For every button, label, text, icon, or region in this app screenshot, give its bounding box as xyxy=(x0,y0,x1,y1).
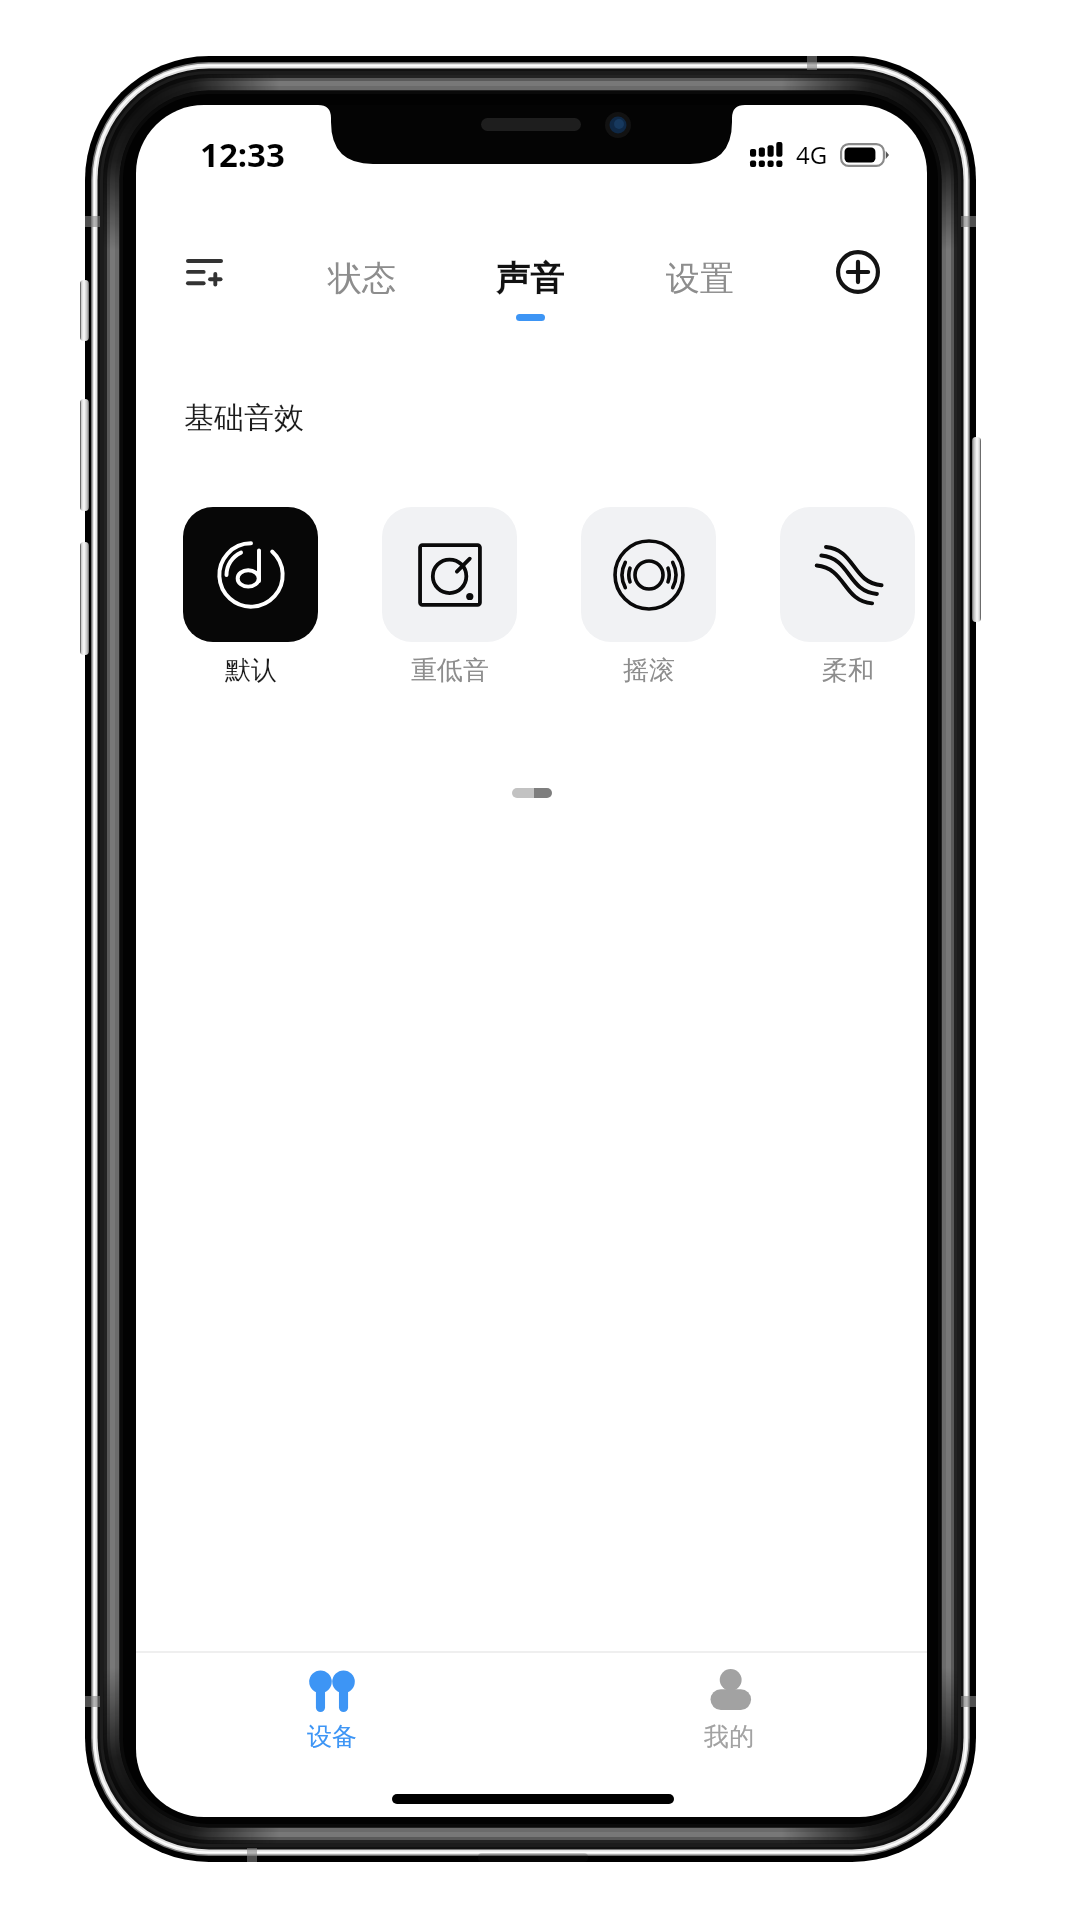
staticText: 重低音 xyxy=(411,654,489,687)
button[interactable]: 默认 xyxy=(183,507,318,703)
staticText: 我的 xyxy=(704,1721,754,1752)
staticText: 摇滚 xyxy=(623,654,675,687)
staticText: 声音 xyxy=(496,257,564,300)
button[interactable]: 重低音 xyxy=(382,507,517,703)
button[interactable]: Add to playlist xyxy=(166,241,243,307)
button[interactable]: 设备 xyxy=(242,1651,422,1771)
staticText: 设置 xyxy=(666,257,734,300)
button[interactable]: Add device xyxy=(822,236,894,308)
staticText: 设备 xyxy=(307,1721,357,1752)
button[interactable]: 摇滚 xyxy=(581,507,716,703)
button[interactable]: 柔和 xyxy=(780,507,915,703)
staticText: 状态 xyxy=(328,257,396,300)
staticText: 柔和 xyxy=(822,654,874,687)
staticText: 基础音效 xyxy=(184,399,304,437)
button[interactable]: 设置 xyxy=(632,246,768,342)
staticText: 4G xyxy=(796,138,828,171)
button[interactable]: 声音 xyxy=(462,246,598,342)
staticText: 12:33 xyxy=(200,132,285,177)
button[interactable]: 状态 xyxy=(294,246,430,342)
staticText: 默认 xyxy=(225,654,277,687)
button[interactable]: 我的 xyxy=(639,1651,819,1771)
